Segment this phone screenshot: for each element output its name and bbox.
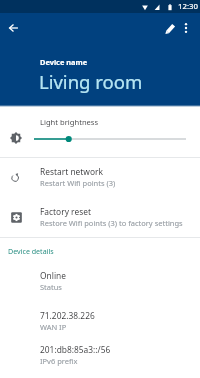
staticText: Device details <box>8 246 54 256</box>
staticText: Online <box>40 270 66 281</box>
staticText: Factory reset <box>40 206 91 217</box>
staticText: IPv6 prefix <box>40 356 78 366</box>
staticText: Restart Wifi points (3) <box>40 178 116 188</box>
staticText: WAN IP <box>40 322 67 332</box>
staticText: 71.202.38.226 <box>40 310 95 321</box>
staticText: Device name <box>40 57 88 67</box>
staticText: Status <box>40 282 62 292</box>
staticText: 12:30 <box>178 1 198 12</box>
staticText: 201:db8:85a3::/56 <box>40 344 111 355</box>
staticText: Restore Wifi points (3) to factory setti… <box>40 218 183 228</box>
staticText: Living room <box>39 69 143 94</box>
button[interactable]: More options <box>175 17 197 39</box>
button[interactable] <box>0 158 200 198</box>
button[interactable]: Edit <box>158 15 184 41</box>
button[interactable] <box>0 302 200 340</box>
button[interactable] <box>0 262 200 300</box>
staticText: Light brightness <box>40 117 99 127</box>
button[interactable] <box>0 198 200 238</box>
staticText: Restart network <box>40 166 103 177</box>
button[interactable]: Back <box>0 15 26 41</box>
button[interactable] <box>0 107 200 157</box>
button[interactable] <box>0 336 200 374</box>
